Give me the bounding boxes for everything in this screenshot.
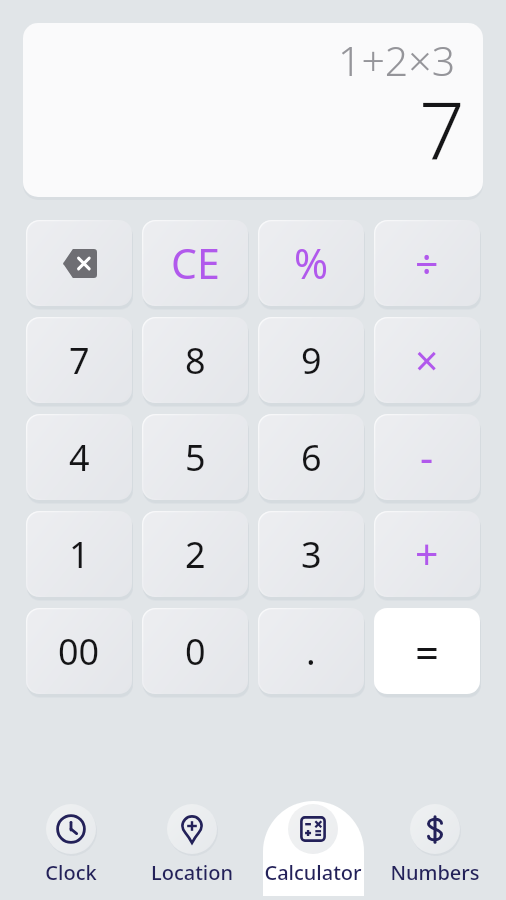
staticText: + [415, 526, 439, 582]
button[interactable]: Clock [10, 797, 131, 896]
staticText: 7 [419, 74, 465, 183]
staticText: 1+2×3 [338, 32, 456, 88]
button[interactable]: % [258, 220, 364, 306]
button[interactable]: 7 [26, 317, 132, 403]
button[interactable]: ÷ [374, 220, 480, 306]
button[interactable]: Calculator [252, 797, 374, 896]
staticText: 00 [58, 627, 100, 676]
button[interactable]: 8 [142, 317, 248, 403]
button[interactable]: CE [142, 220, 248, 306]
staticText: 8 [185, 336, 206, 385]
button[interactable]: 9 [258, 317, 364, 403]
staticText: Calculator [264, 859, 362, 886]
staticText: 0 [185, 627, 206, 676]
staticText: 5 [185, 433, 206, 482]
button[interactable]: × [374, 317, 480, 403]
button[interactable]: + [374, 511, 480, 597]
button[interactable]: . [258, 608, 364, 694]
button[interactable]: Backspace [26, 220, 132, 306]
staticText: CE [171, 235, 220, 291]
button[interactable]: Location [131, 797, 252, 896]
button[interactable]: Numbers [374, 797, 496, 896]
button[interactable]: 00 [26, 608, 132, 694]
staticText: 6 [301, 433, 322, 482]
staticText: Clock [45, 859, 97, 886]
button[interactable]: 0 [142, 608, 248, 694]
staticText: 1 [69, 530, 90, 579]
staticText: % [294, 235, 329, 291]
button[interactable]: 6 [258, 414, 364, 500]
staticText: 2 [185, 530, 206, 579]
staticText: Location [151, 859, 233, 886]
staticText: 3 [301, 530, 322, 579]
staticText: Numbers [390, 859, 480, 886]
button[interactable]: 2 [142, 511, 248, 597]
button[interactable]: 4 [26, 414, 132, 500]
staticText: ÷ [415, 235, 439, 291]
button[interactable]: = [374, 608, 480, 694]
staticText: - [420, 429, 434, 485]
staticText: × [415, 332, 439, 388]
staticText: = [415, 623, 440, 680]
button[interactable]: 5 [142, 414, 248, 500]
button[interactable]: 3 [258, 511, 364, 597]
staticText: 7 [69, 336, 90, 385]
staticText: 9 [301, 336, 322, 385]
staticText: 4 [69, 433, 90, 482]
button[interactable]: 1 [26, 511, 132, 597]
button[interactable]: - [374, 414, 480, 500]
staticText: . [306, 627, 316, 676]
